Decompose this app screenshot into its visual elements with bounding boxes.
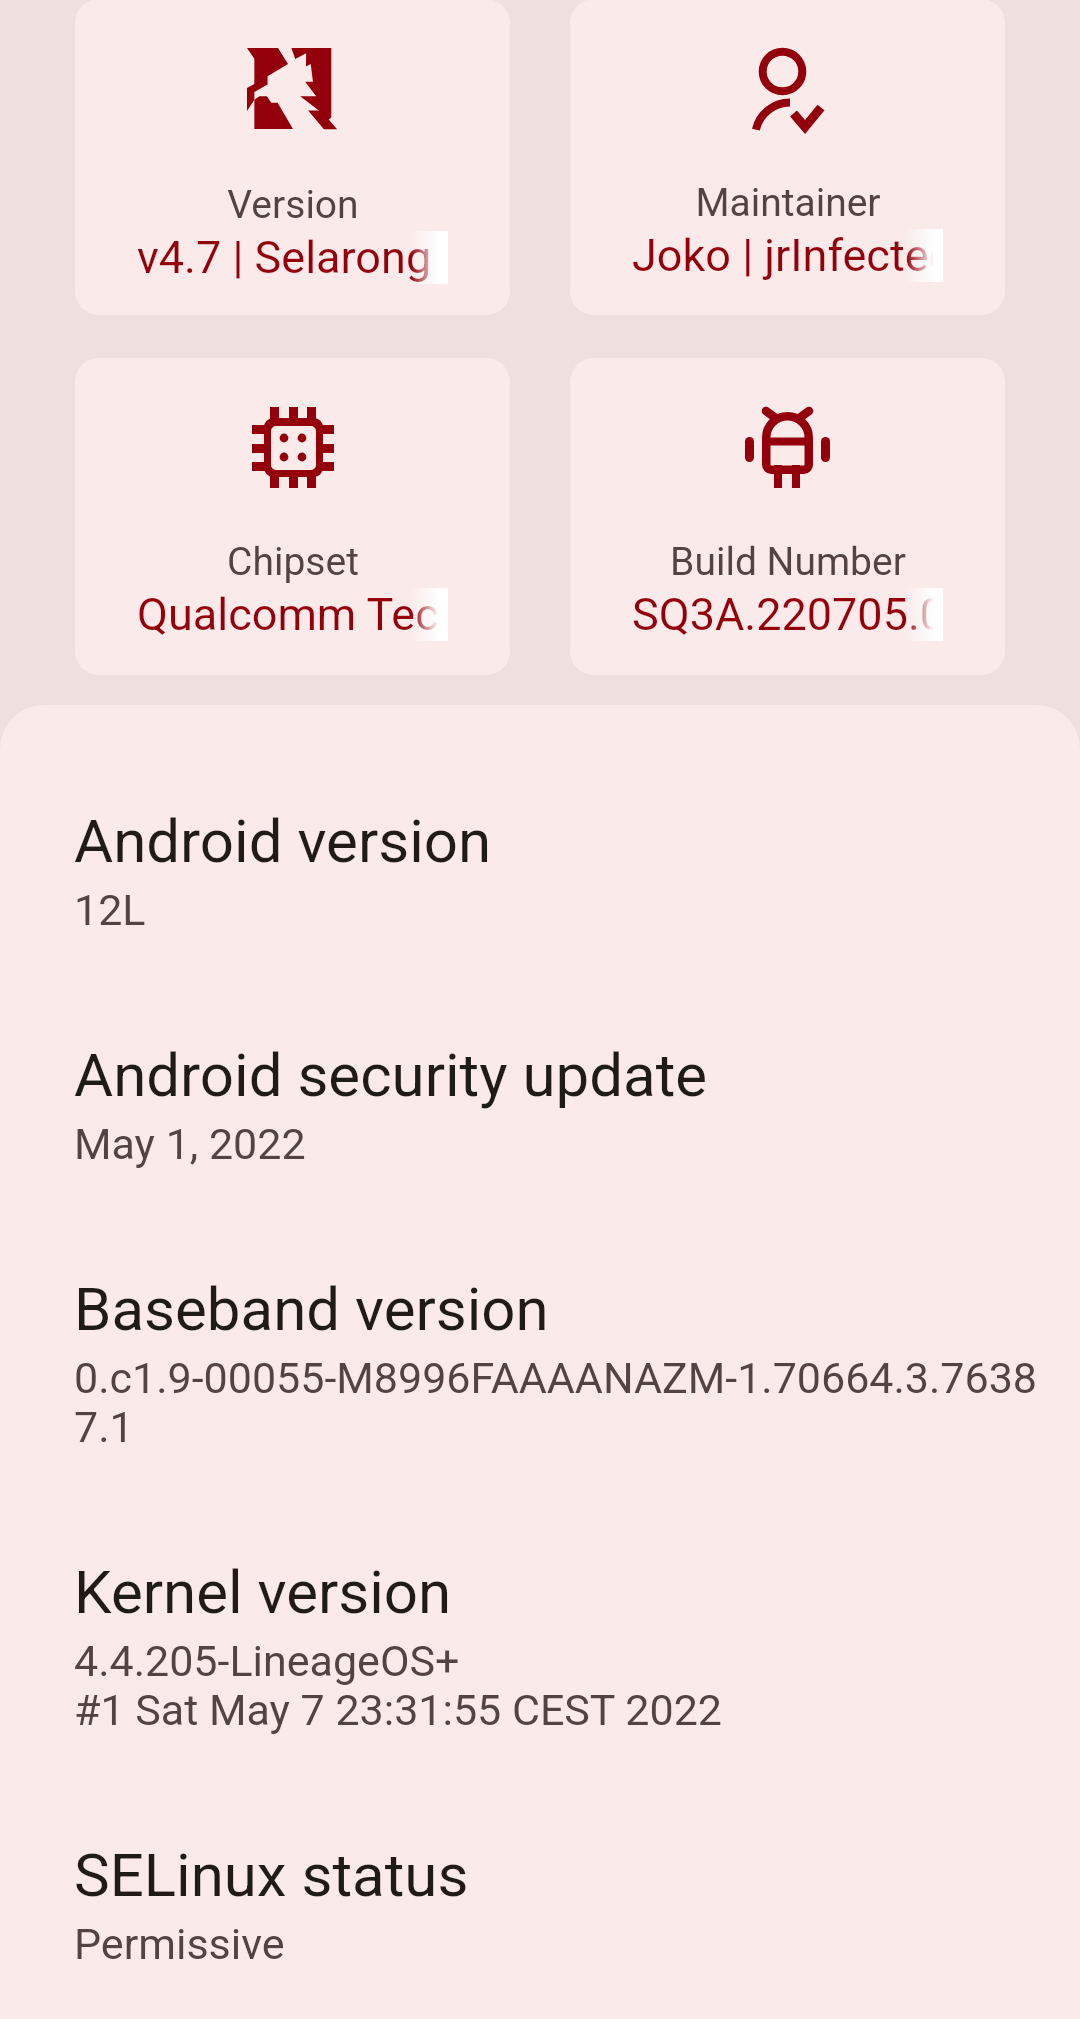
staticText: Version	[227, 182, 359, 228]
staticText: Joko | jrInfected	[632, 229, 943, 282]
staticText: 4.4.205-LineageOS+ #1 Sat May 7 23:31:55…	[74, 1636, 723, 1735]
staticText: 0.c1.9-00055-M8996FAAAANAZM-1.70664.3.76…	[74, 1353, 1038, 1452]
button[interactable]: Maintainer	[570, 0, 1005, 315]
staticText: Chipset	[227, 539, 359, 585]
staticText: Build Number	[670, 539, 906, 585]
staticText: v4.7 | Selarong |	[137, 231, 448, 284]
staticText: SELinux status	[74, 1840, 469, 1910]
button[interactable]: SELinux status	[74, 1840, 1050, 2019]
staticText: Qualcomm Techn	[137, 588, 448, 641]
staticText: Maintainer	[695, 180, 881, 226]
staticText: SQ3A.220705.00	[632, 588, 943, 641]
staticText: Android security update	[74, 1040, 708, 1110]
button[interactable]: Baseband version	[74, 1274, 1050, 1557]
staticText: May 1, 2022	[74, 1119, 306, 1169]
button[interactable]: Chipset	[75, 358, 510, 675]
button[interactable]: Android security update	[74, 1040, 1050, 1274]
staticText: Android version	[74, 806, 492, 876]
button[interactable]: Build number	[570, 358, 1005, 675]
staticText: Permissive	[74, 1919, 285, 1969]
staticText: Kernel version	[74, 1557, 452, 1627]
button[interactable]: Version	[75, 0, 510, 315]
staticText: 12L	[74, 885, 146, 935]
button[interactable]: Android version	[74, 806, 1050, 1040]
staticText: Baseband version	[74, 1274, 549, 1344]
button[interactable]: Kernel version	[74, 1557, 1050, 1840]
